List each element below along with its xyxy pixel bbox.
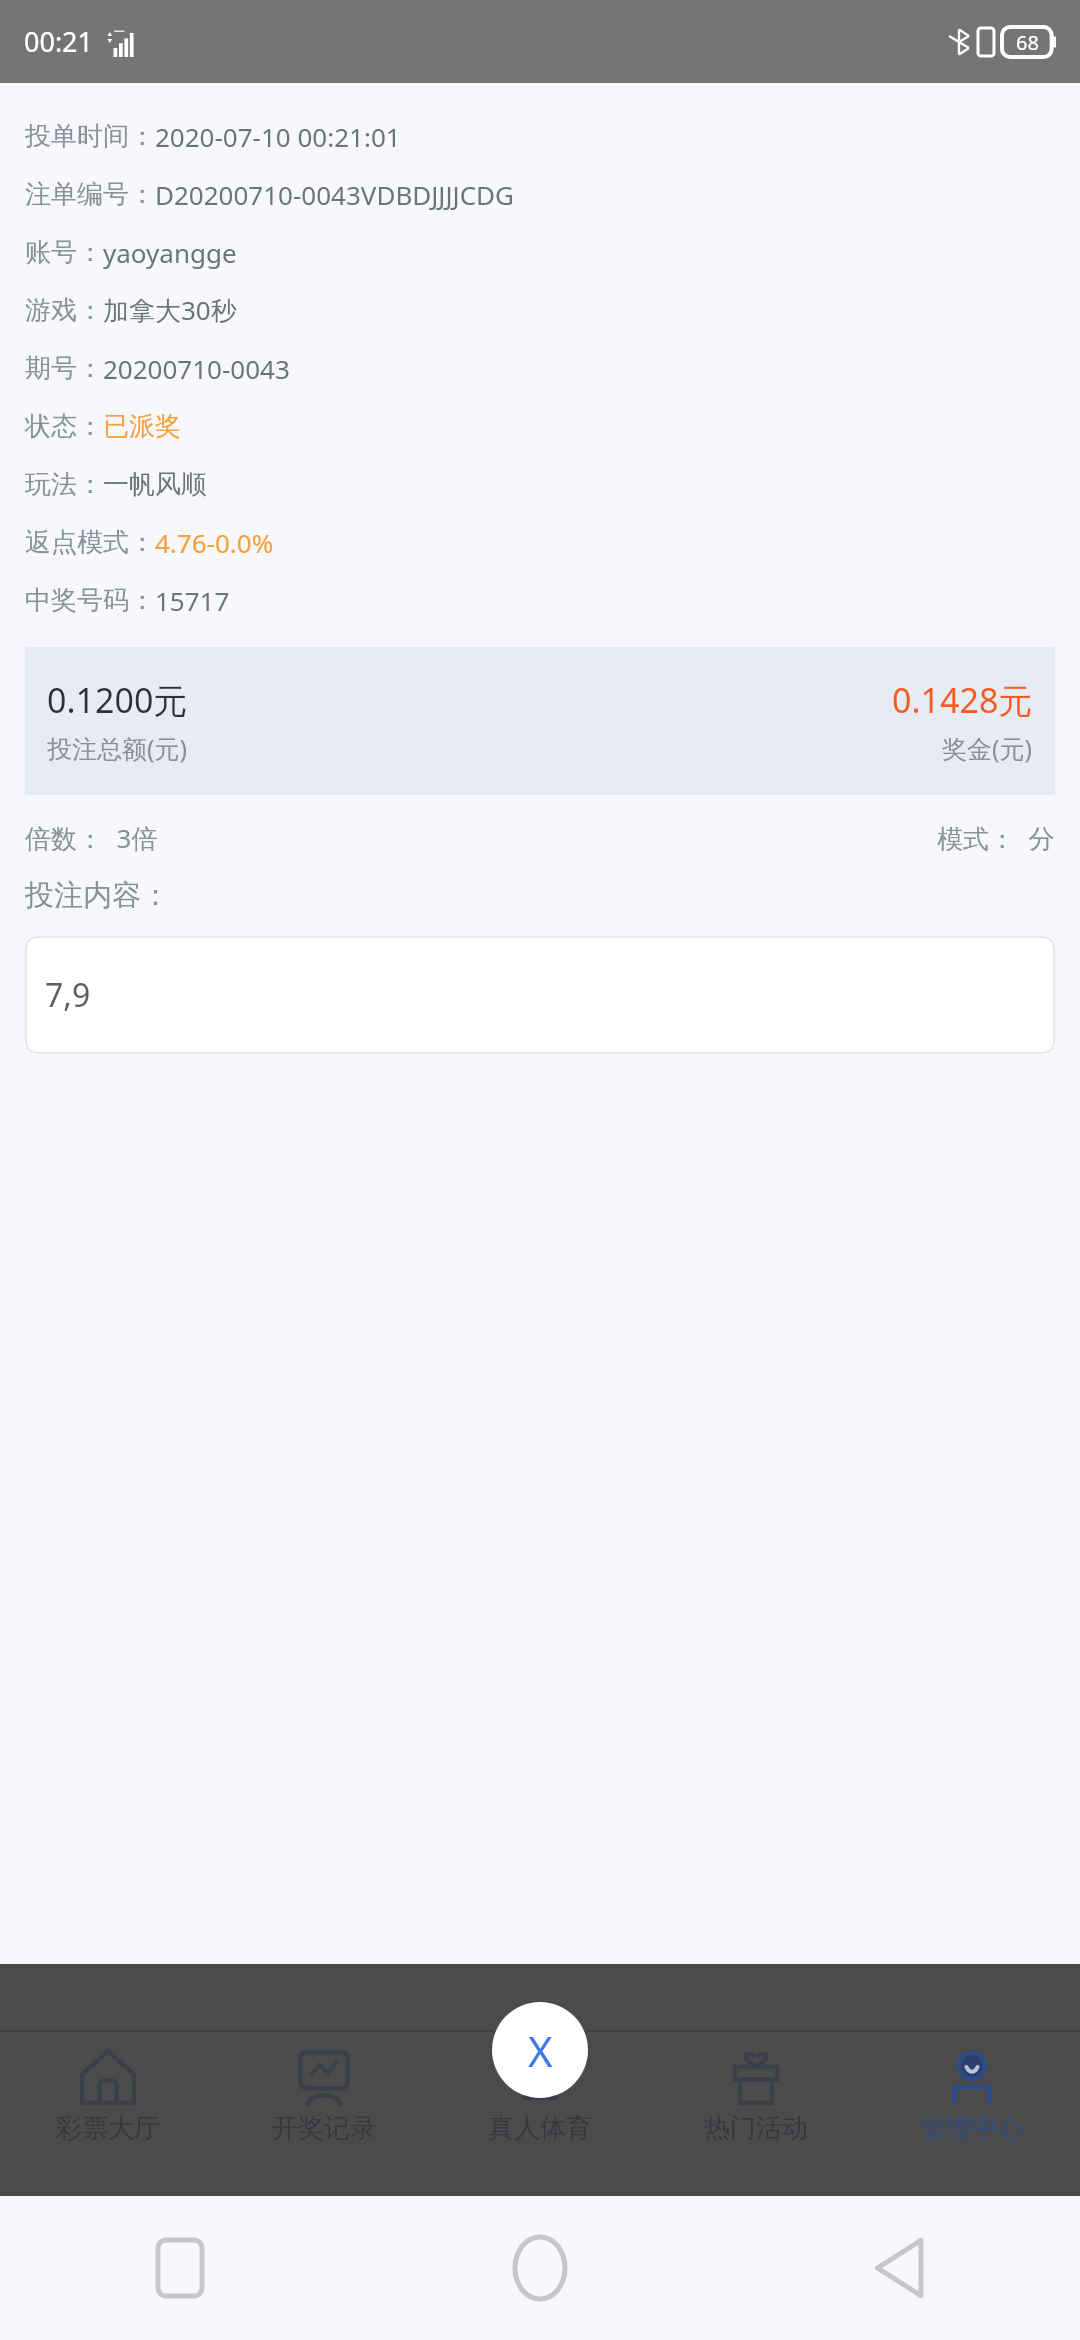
staticText: 真人体育: [488, 2112, 592, 2145]
staticText: 投注内容：: [25, 877, 170, 914]
staticText: 15717: [155, 583, 230, 618]
button[interactable]: 关闭: [492, 2002, 588, 2098]
staticText: 0.1200元: [47, 677, 188, 723]
staticText: 账号：: [25, 236, 103, 269]
other: Recents: [158, 2240, 202, 2296]
staticText: 管理中心: [920, 2112, 1024, 2145]
staticText: 4.76-0.0%: [155, 525, 274, 560]
staticText: 一帆风顺: [103, 468, 207, 501]
staticText: 期号：: [25, 352, 103, 385]
staticText: 加拿大30秒: [103, 292, 237, 328]
staticText: 倍数： 3倍: [25, 820, 158, 856]
staticText: 热门活动: [704, 2112, 808, 2145]
staticText: 中奖号码：: [25, 584, 155, 617]
staticText: 返点模式：: [25, 526, 155, 559]
staticText: 彩票大厅: [56, 2112, 160, 2145]
staticText: X: [528, 2022, 553, 2079]
button[interactable]: 开奖记录: [216, 2032, 432, 2196]
staticText: 玩法：: [25, 468, 103, 501]
button[interactable]: 热门活动: [648, 2032, 864, 2196]
staticText: 奖金(元): [942, 731, 1033, 765]
button[interactable]: 彩票大厅: [0, 2032, 216, 2196]
button[interactable]: 管理中心: [864, 2032, 1080, 2196]
staticText: 20200710-0043: [103, 351, 290, 386]
button[interactable]: 7,9: [25, 936, 1055, 1054]
staticText: 7,9: [45, 973, 91, 1017]
staticText: 状态：: [25, 410, 103, 443]
staticText: D20200710-0043VDBDJJJJCDG: [155, 177, 515, 212]
staticText: 0.1428元: [892, 677, 1033, 723]
other: Home: [515, 2237, 565, 2299]
staticText: 68: [1016, 29, 1039, 56]
button[interactable]: 0.1200元: [25, 647, 1055, 795]
staticText: 投单时间：: [25, 120, 155, 153]
staticText: 2020-07-10 00:21:01: [155, 119, 401, 154]
staticText: 已派奖: [103, 410, 181, 443]
staticText: 注单编号：: [25, 178, 155, 211]
staticText: 投注总额(元): [47, 731, 188, 765]
staticText: 游戏：: [25, 294, 103, 327]
button[interactable]: 真人体育: [432, 2032, 648, 2196]
staticText: 开奖记录: [272, 2112, 376, 2145]
staticText: 模式： 分: [937, 820, 1055, 856]
other: Back: [875, 2238, 925, 2298]
staticText: 00:21: [24, 23, 94, 60]
staticText: yaoyangge: [103, 235, 237, 270]
